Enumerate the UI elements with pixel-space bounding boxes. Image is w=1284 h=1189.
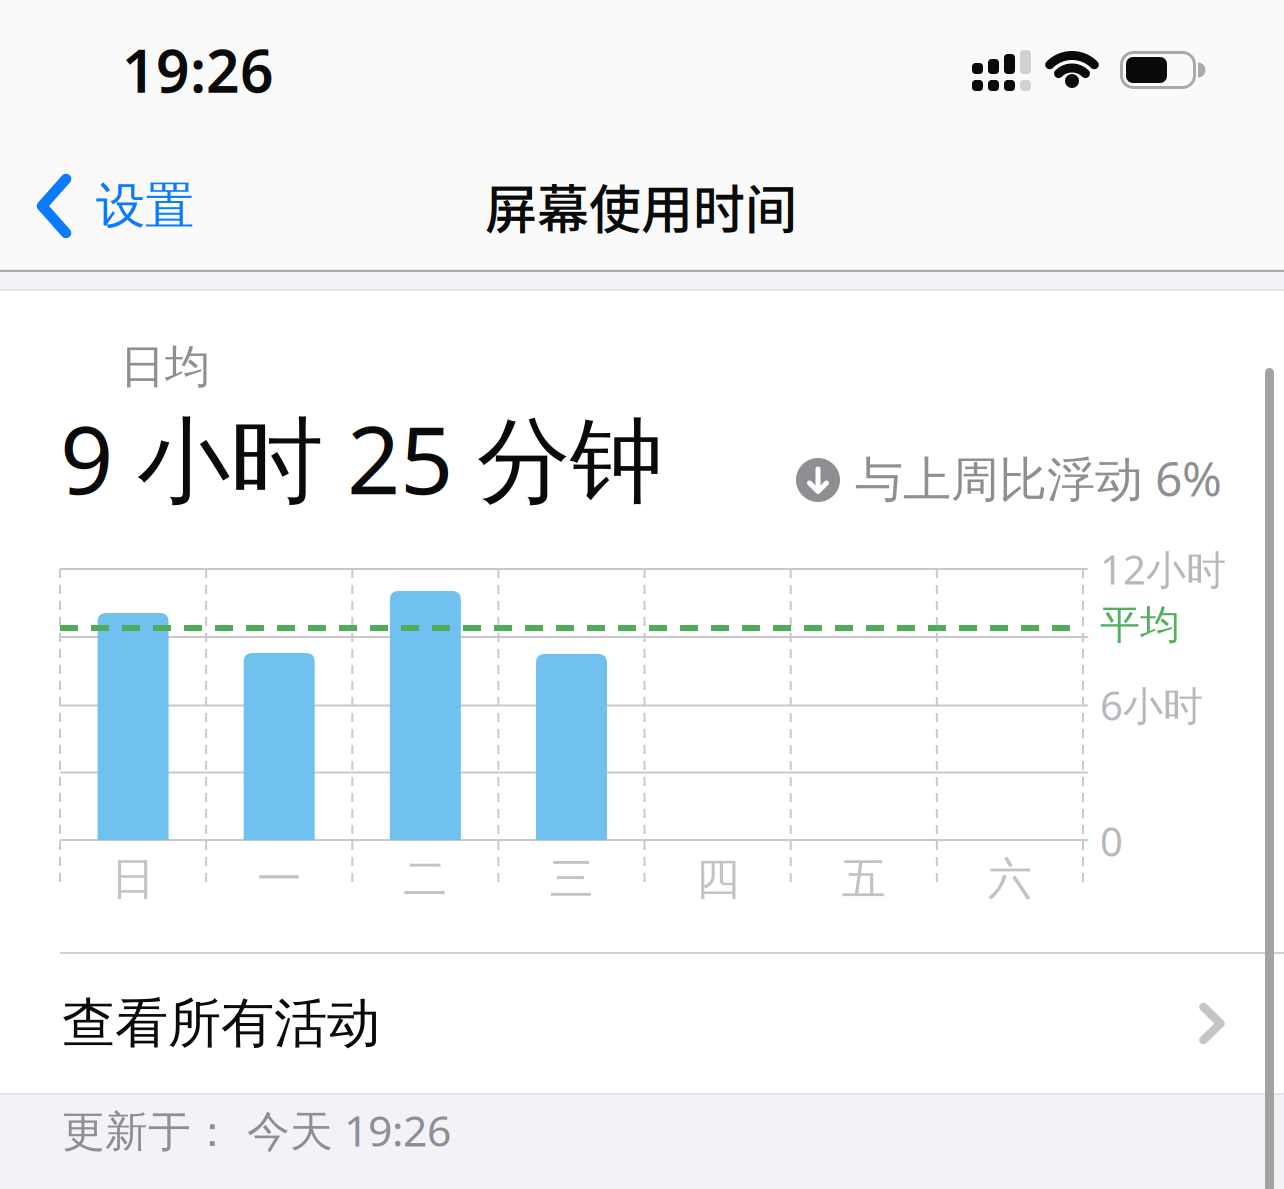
- staticText: 0: [1100, 814, 1123, 867]
- staticText: 三: [549, 852, 593, 906]
- staticText: 日均: [120, 339, 210, 395]
- button[interactable]: 返回设置: [38, 176, 194, 236]
- staticText: 一: [257, 852, 301, 906]
- staticText: 查看所有活动: [62, 991, 380, 1056]
- staticText: 与上周比浮动 6%: [855, 446, 1222, 510]
- staticText: 12小时: [1100, 542, 1226, 595]
- button[interactable]: 查看所有活动: [60, 954, 1284, 1093]
- staticText: 四: [696, 852, 740, 906]
- staticText: 6小时: [1100, 678, 1203, 731]
- staticText: 平均: [1100, 600, 1180, 649]
- staticText: 设置: [96, 176, 194, 236]
- staticText: 二: [403, 852, 447, 906]
- staticText: 六: [988, 852, 1032, 906]
- staticText: 五: [842, 852, 886, 906]
- staticText: 9 小时 25 分钟: [60, 396, 663, 520]
- staticText: 更新于： 今天 19:26: [62, 1102, 451, 1158]
- staticText: 屏幕使用时间: [485, 168, 797, 244]
- staticText: 日: [111, 852, 155, 906]
- staticText: 19:26: [122, 31, 274, 109]
